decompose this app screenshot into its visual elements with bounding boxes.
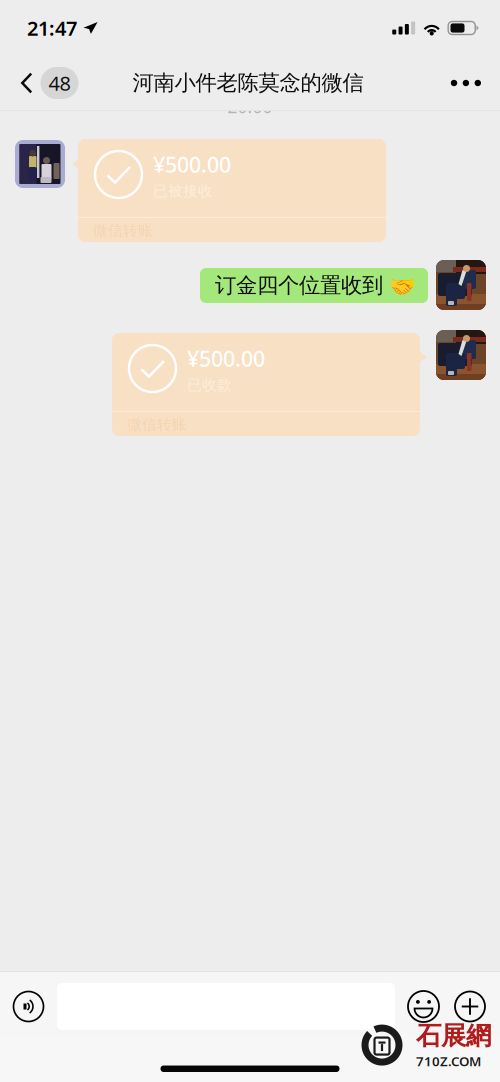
staticText: 微信转账 [93,221,153,239]
button[interactable]: Emoji [395,975,455,1038]
staticText: 21:47 [27,15,77,41]
button[interactable]: Voice message [0,975,57,1038]
staticText: 河南小件老陈莫念的微信 [132,70,363,96]
button[interactable]: More options [455,975,500,1038]
staticText: 48 [48,70,70,96]
button[interactable]: 48 [0,56,92,110]
staticText: 710Z.COM [416,1052,481,1070]
button[interactable] [57,983,395,1030]
staticText: 订金四个位置收到 🤝 [215,272,416,299]
staticText: ¥500.00 [153,150,231,179]
staticText: 微信转账 [127,415,187,433]
button[interactable]: More [433,56,500,110]
staticText: 已收款 [187,376,232,394]
staticText: 石展網 [416,1020,491,1051]
staticText: ¥500.00 [187,344,265,373]
staticText: 已被接收 [153,182,213,200]
staticText: 20:00 [227,95,272,118]
